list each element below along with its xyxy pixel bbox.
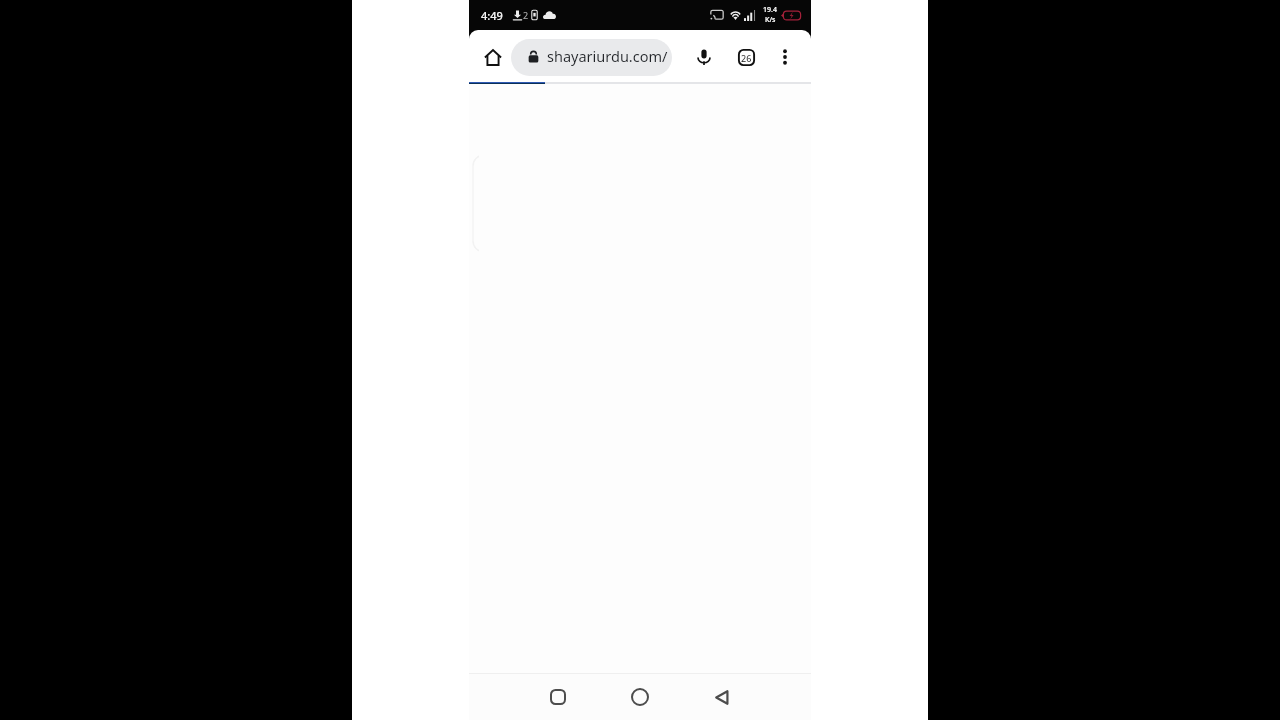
button[interactable]: More options (772, 44, 798, 70)
staticText: 26 (741, 52, 752, 64)
button[interactable]: Back (703, 678, 741, 716)
button[interactable]: Switch tabs, 26 open (733, 44, 759, 70)
staticText: 19.4 (763, 5, 777, 15)
button[interactable]: Home (621, 678, 659, 716)
button[interactable]: shayariurdu.com/ (511, 39, 672, 76)
button[interactable]: Voice search (689, 42, 719, 72)
staticText: 2 (523, 9, 529, 21)
staticText: K/s (765, 15, 776, 25)
button[interactable]: Recent apps (539, 678, 577, 716)
staticText: shayariurdu.com/ (547, 46, 668, 66)
staticText: 4:49 (481, 8, 503, 23)
button[interactable]: Home page (480, 44, 506, 70)
